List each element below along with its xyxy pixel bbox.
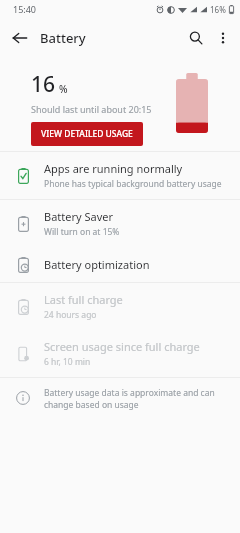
staticText: 6 hr, 10 min [44,356,91,368]
staticText: Screen usage since full charge [44,339,200,354]
button[interactable]: Back [6,24,34,52]
staticText: Battery usage data is approximate and ca… [44,387,226,411]
button[interactable]: Screen usage since full charge [0,330,240,377]
staticText: Battery [40,29,86,47]
staticText: 24 hours ago [44,309,97,321]
staticText: Apps are running normally [44,161,183,176]
staticText: 15:40 [13,3,37,15]
staticText: 16% [210,4,226,15]
staticText: 16 [31,70,56,99]
button[interactable]: More options [210,25,236,51]
staticText: Battery optimization [44,257,150,272]
button[interactable]: VIEW DETAILED USAGE [31,122,143,146]
staticText: Battery Saver [44,209,114,224]
staticText: VIEW DETAILED USAGE [41,128,133,140]
button[interactable]: Last full charge [0,283,240,330]
staticText: Last full charge [44,292,123,307]
button[interactable]: Battery optimization [0,247,240,282]
staticText: Should last until about 20:15 [31,103,152,115]
staticText: Phone has typical background battery usa… [44,178,222,190]
button[interactable]: Apps are running normally [0,152,240,199]
staticText: Will turn on at 15% [44,226,120,238]
button[interactable]: Battery Saver [0,200,240,247]
staticText: % [59,82,68,96]
button[interactable]: Search [182,24,210,52]
